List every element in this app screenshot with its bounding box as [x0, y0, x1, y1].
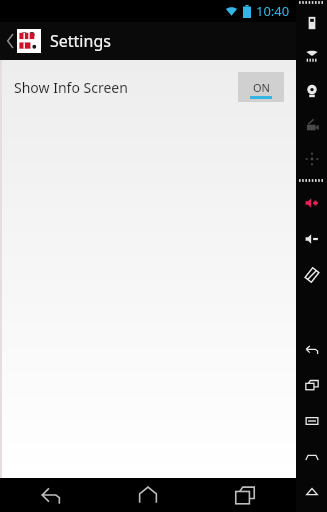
button[interactable]: Camera	[301, 80, 323, 102]
button[interactable]: Recents	[301, 374, 323, 396]
button[interactable]: Volume up	[301, 192, 323, 214]
button[interactable]: Power	[301, 12, 323, 34]
button[interactable]: Back	[29, 478, 73, 512]
button[interactable]: Menu	[301, 410, 323, 432]
staticText: 10:40	[256, 2, 290, 20]
button[interactable]: Back	[301, 338, 323, 360]
button[interactable]: Video	[301, 114, 323, 136]
button[interactable]: Navigate up	[4, 22, 44, 60]
staticText: ON	[253, 80, 270, 95]
button[interactable]: Up	[301, 482, 323, 504]
button[interactable]: Volume down	[301, 228, 323, 250]
button[interactable]: Home	[126, 478, 170, 512]
button[interactable]: Recent apps	[223, 478, 267, 512]
button[interactable]: D-pad	[301, 148, 323, 170]
button[interactable]: GPS	[301, 46, 323, 68]
staticText: Settings	[50, 30, 111, 52]
button[interactable]: ON	[238, 72, 284, 102]
staticText: Show Info Screen	[14, 78, 128, 97]
button[interactable]: Rotate	[301, 264, 323, 286]
button[interactable]: Home	[301, 446, 323, 468]
button[interactable]: Show Info Screen	[0, 60, 296, 114]
